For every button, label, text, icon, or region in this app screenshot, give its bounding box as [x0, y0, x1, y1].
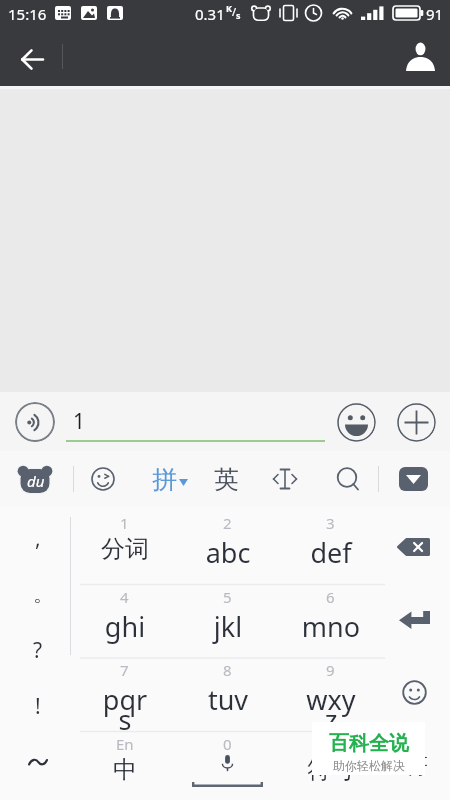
staticText: 1: [73, 407, 86, 436]
staticText: du: [27, 471, 45, 491]
button[interactable]: ,: [3, 510, 73, 566]
staticText: def: [286, 534, 376, 571]
staticText: 9: [326, 660, 335, 680]
staticText: s: [236, 9, 241, 21]
staticText: pqr s: [80, 681, 170, 738]
staticText: 英: [214, 464, 239, 495]
staticText: ,: [35, 524, 41, 553]
staticText: 4: [120, 587, 129, 607]
staticText: tuv: [183, 681, 273, 718]
button[interactable]: 6: [279, 585, 382, 658]
button[interactable]: Backspace: [380, 527, 448, 567]
button[interactable]: 4: [73, 585, 176, 658]
button[interactable]: More options: [396, 402, 436, 442]
button[interactable]: 9: [279, 658, 382, 731]
button[interactable]: Symbols: [382, 745, 450, 785]
button[interactable]: Emoticons: [84, 460, 121, 497]
staticText: mno: [286, 608, 376, 645]
button[interactable]: 英: [208, 461, 244, 497]
staticText: 符号: [307, 755, 355, 785]
staticText: 1: [120, 513, 129, 533]
button[interactable]: 3: [279, 511, 382, 584]
staticText: 。: [33, 581, 54, 607]
staticText: 0.31: [195, 4, 225, 24]
button[interactable]: 。: [8, 566, 78, 622]
button[interactable]: Move cursor: [267, 461, 303, 497]
button[interactable]: Hide keyboard: [399, 467, 428, 491]
button[interactable]: Search: [330, 461, 366, 497]
staticText: En: [116, 734, 134, 754]
button[interactable]: 符号: [279, 732, 382, 800]
staticText: 91: [426, 4, 444, 24]
button[interactable]: Contact profile: [397, 34, 443, 78]
button[interactable]: Back: [9, 37, 56, 81]
button[interactable]: Emoji: [336, 402, 376, 442]
staticText: 6: [326, 587, 335, 607]
staticText: 15:16: [8, 4, 47, 24]
staticText: ?: [33, 636, 43, 665]
button[interactable]: Voice input: [15, 402, 55, 442]
button[interactable]: Emoji keyboard: [380, 672, 448, 712]
staticText: 百科全说: [329, 731, 409, 756]
staticText: 符: [405, 751, 428, 780]
staticText: /: [232, 4, 237, 19]
staticText: 2: [223, 513, 232, 533]
button[interactable]: 2: [176, 511, 279, 584]
button[interactable]: En: [73, 732, 176, 800]
staticText: jkl: [183, 608, 273, 645]
button[interactable]: Enter: [380, 600, 448, 640]
staticText: wxy z: [286, 681, 376, 738]
button[interactable]: 1: [73, 511, 176, 584]
button[interactable]: !: [3, 678, 73, 734]
staticText: 7: [120, 660, 129, 680]
staticText: !: [35, 692, 41, 721]
button[interactable]: 7: [73, 658, 176, 731]
staticText: ghi: [80, 608, 170, 645]
staticText: 5: [223, 587, 232, 607]
button[interactable]: Baidu input: [14, 458, 56, 500]
staticText: 0: [223, 734, 232, 754]
staticText: abc: [183, 534, 273, 571]
staticText: 拼: [152, 464, 177, 495]
staticText: K: [226, 2, 232, 14]
staticText: 分词: [80, 534, 170, 564]
button[interactable]: 8: [176, 658, 279, 731]
button[interactable]: Space: [176, 732, 279, 800]
button[interactable]: 5: [176, 585, 279, 658]
button[interactable]: ?: [3, 622, 73, 678]
staticText: 8: [223, 660, 232, 680]
staticText: 助你轻松解决: [333, 758, 405, 773]
button[interactable]: [3, 734, 73, 790]
staticText: 3: [326, 513, 335, 533]
button[interactable]: 拼: [152, 459, 188, 499]
staticText: 中: [113, 755, 137, 785]
